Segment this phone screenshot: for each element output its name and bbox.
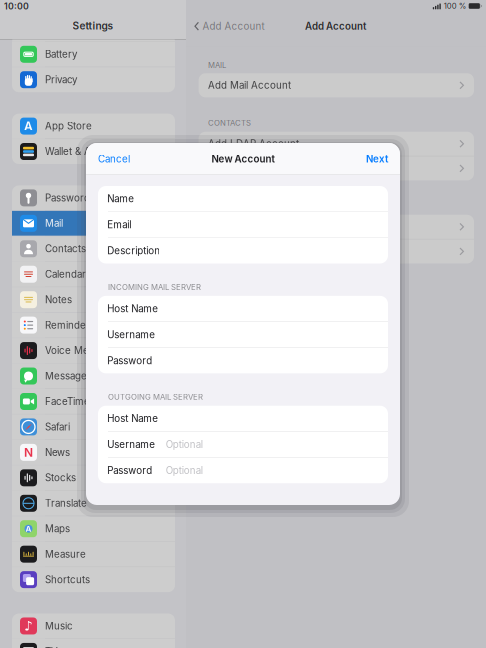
staticText: FaceTime	[45, 396, 90, 407]
staticText: Voice Memos	[45, 345, 109, 356]
button[interactable]: N	[12, 440, 175, 465]
staticText: A	[24, 119, 33, 133]
button[interactable]: Mail	[12, 211, 175, 236]
button[interactable]: A	[12, 516, 175, 541]
staticText: Add Account	[202, 20, 264, 32]
staticText: Cancel	[98, 153, 130, 165]
button[interactable]: A	[12, 114, 175, 138]
button[interactable]: Shortcuts	[12, 567, 175, 592]
staticText: Calendar	[45, 268, 86, 280]
staticText: Translate	[45, 497, 87, 509]
staticText: Password	[107, 465, 152, 476]
staticText: Measure	[45, 548, 86, 560]
staticText: Shortcuts	[45, 574, 90, 585]
button[interactable]: Privacy	[12, 67, 175, 92]
staticText: Passwords	[45, 192, 95, 204]
staticText: Battery	[45, 48, 77, 60]
staticText: Settings	[72, 20, 113, 32]
button[interactable]: Add Account	[186, 16, 264, 36]
button[interactable]: Safari	[12, 414, 175, 439]
staticText: Add Mail Account	[208, 79, 291, 91]
staticText: Add CardDAV Account	[208, 162, 315, 174]
staticText: TV	[45, 645, 58, 648]
button[interactable]: Translate	[12, 491, 175, 516]
staticText: Safari	[45, 421, 70, 433]
staticText: Wallet & Apple Pay	[45, 146, 130, 157]
button[interactable]: Add LDAP Account	[199, 132, 474, 156]
button[interactable]: Reminders	[12, 313, 175, 338]
button[interactable]: Cancel	[86, 146, 130, 172]
staticText: Description	[107, 245, 160, 257]
staticText: ♪	[24, 618, 33, 634]
staticText: OUTGOING MAIL SERVER	[108, 392, 203, 402]
button[interactable]: TV	[12, 639, 175, 648]
button[interactable]: Wallet & Apple Pay	[12, 139, 175, 164]
staticText: Optional	[166, 439, 203, 450]
staticText: A	[25, 524, 31, 534]
button[interactable]: Contacts	[12, 236, 175, 261]
button[interactable]: Add CardDAV Account	[199, 156, 474, 180]
staticText: MAIL	[208, 60, 226, 70]
staticText: Messages	[45, 370, 92, 382]
button[interactable]: FaceTime	[12, 389, 175, 414]
staticText: Music	[45, 620, 73, 632]
button[interactable]: Messages	[12, 364, 175, 388]
button[interactable]: Passwords	[12, 185, 175, 210]
button[interactable]: Measure	[12, 542, 175, 567]
staticText: New Account	[211, 153, 274, 165]
button[interactable]: Notes	[12, 287, 175, 312]
staticText: Next	[366, 153, 388, 165]
staticText: CONTACTS	[208, 118, 251, 128]
staticText: Email	[107, 219, 131, 231]
button[interactable]: Voice Memos	[12, 338, 175, 363]
button[interactable]: Add Mail Account	[199, 73, 474, 97]
staticText: Privacy	[45, 74, 77, 86]
staticText: Host Name	[107, 413, 158, 424]
staticText: Host Name	[107, 303, 158, 314]
button[interactable]: ♪	[12, 613, 175, 638]
staticText: Username	[107, 439, 155, 450]
staticText: Contacts	[45, 243, 86, 255]
staticText: Notes	[45, 294, 72, 306]
staticText: 10:00	[4, 1, 29, 12]
staticText: Stocks	[45, 472, 76, 484]
staticText: 100 %	[444, 1, 467, 11]
staticText: Username	[107, 329, 155, 340]
button[interactable]: Add CalDAV Account	[199, 215, 474, 239]
button[interactable]: Stocks	[12, 465, 175, 490]
staticText: Maps	[45, 523, 70, 535]
staticText: Name	[107, 193, 134, 205]
staticText: Optional	[166, 465, 203, 476]
button[interactable]: Add Subscribed Calendar	[199, 239, 474, 263]
button[interactable]: Battery	[12, 42, 175, 67]
staticText: Add Account	[305, 20, 366, 32]
staticText: Reminders	[45, 319, 95, 331]
staticText: News	[45, 446, 70, 458]
staticText: N	[24, 445, 33, 460]
staticText: Mail	[45, 217, 63, 229]
button[interactable]: Calendar	[12, 262, 175, 287]
staticText: Add LDAP Account	[208, 138, 299, 150]
staticText: Password	[107, 355, 152, 366]
staticText: App Store	[45, 120, 92, 132]
button[interactable]: Next	[366, 146, 400, 172]
staticText: INCOMING MAIL SERVER	[108, 282, 201, 292]
